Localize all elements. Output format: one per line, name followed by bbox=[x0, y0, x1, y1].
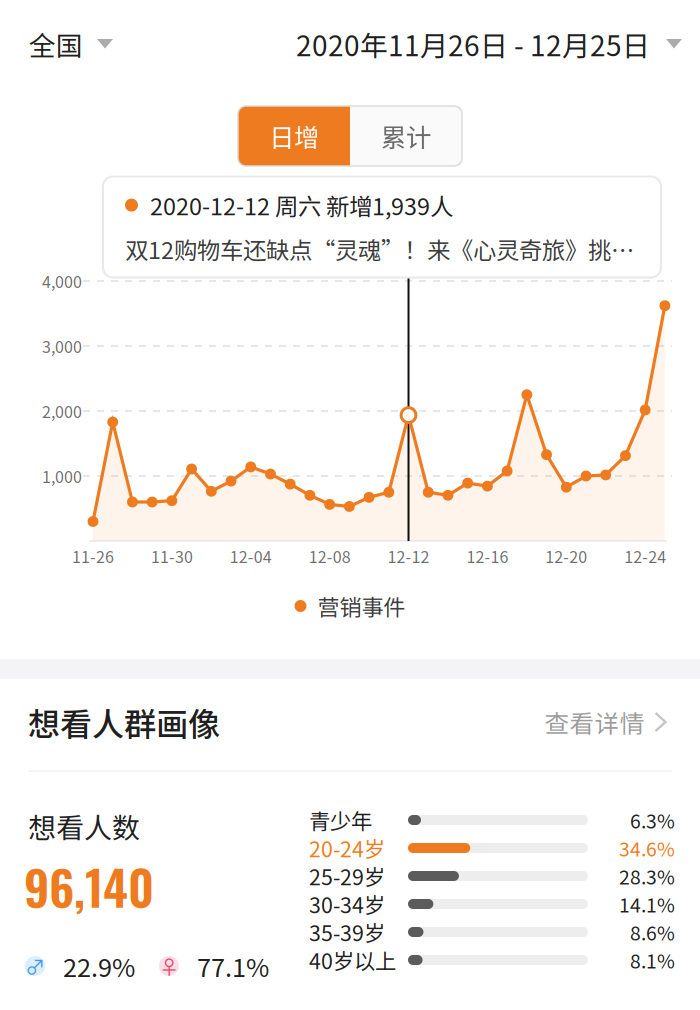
staticText: 20-24岁 bbox=[309, 833, 385, 863]
button[interactable]: 全国 bbox=[23, 15, 119, 73]
staticText: 全国 bbox=[29, 25, 83, 63]
button[interactable]: 累计 bbox=[350, 106, 462, 166]
staticText: 3,000 bbox=[42, 334, 82, 358]
staticText: 12-04 bbox=[230, 544, 272, 568]
staticText: 11-30 bbox=[151, 544, 193, 568]
staticText: 30-34岁 bbox=[309, 889, 385, 919]
staticText: 12-16 bbox=[466, 544, 508, 568]
staticText: 1,000 bbox=[42, 464, 82, 488]
staticText: ♂ bbox=[25, 951, 45, 980]
button[interactable]: 2020年11月26日 - 12月25日 bbox=[290, 14, 688, 74]
button[interactable]: 日增 bbox=[238, 106, 350, 166]
staticText: 想看人数 bbox=[28, 806, 140, 846]
staticText: ♀ bbox=[159, 951, 179, 980]
staticText: 12-12 bbox=[387, 544, 429, 568]
staticText: 34.6% bbox=[619, 834, 675, 862]
button[interactable]: 查看详情 bbox=[538, 694, 673, 750]
staticText: 11-26 bbox=[72, 544, 114, 568]
staticText: 2020-12-12 周六 新增1,939人 bbox=[150, 188, 453, 222]
staticText: 12-08 bbox=[309, 544, 351, 568]
staticText: 35-39岁 bbox=[309, 917, 385, 947]
staticText: 2,000 bbox=[42, 399, 82, 423]
staticText: 40岁以上 bbox=[309, 945, 396, 975]
staticText: 查看详情 bbox=[544, 704, 644, 740]
staticText: 双12购物车还缺点“灵魂”！来《心灵奇旅》挑… bbox=[125, 232, 634, 266]
staticText: 8.1% bbox=[630, 946, 675, 974]
staticText: 4,000 bbox=[42, 269, 82, 293]
staticText: 77.1% bbox=[197, 948, 269, 984]
staticText: 25-29岁 bbox=[309, 861, 385, 891]
staticText: 累计 bbox=[381, 118, 431, 154]
staticText: 6.3% bbox=[630, 806, 675, 834]
staticText: 青少年 bbox=[309, 805, 372, 835]
staticText: 日增 bbox=[269, 118, 319, 154]
staticText: 8.6% bbox=[630, 918, 675, 946]
staticText: 想看人群画像 bbox=[28, 699, 220, 745]
staticText: 12-20 bbox=[545, 544, 587, 568]
staticText: 12-24 bbox=[624, 544, 666, 568]
staticText: 22.9% bbox=[63, 948, 135, 984]
staticText: 营销事件 bbox=[317, 590, 405, 622]
staticText: 96,140 bbox=[24, 850, 154, 921]
staticText: 2020年11月26日 - 12月25日 bbox=[296, 24, 650, 64]
staticText: 14.1% bbox=[619, 890, 675, 918]
staticText: 28.3% bbox=[619, 862, 675, 890]
